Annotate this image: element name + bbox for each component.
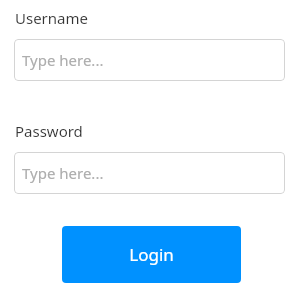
button[interactable]: Type here... — [14, 152, 285, 194]
staticText: Password — [15, 121, 83, 141]
staticText: Type here... — [22, 50, 104, 70]
staticText: Login — [129, 243, 174, 266]
button[interactable]: Login — [62, 226, 241, 283]
staticText: Username — [15, 8, 88, 28]
staticText: Type here... — [22, 163, 104, 183]
button[interactable]: Type here... — [14, 39, 285, 81]
